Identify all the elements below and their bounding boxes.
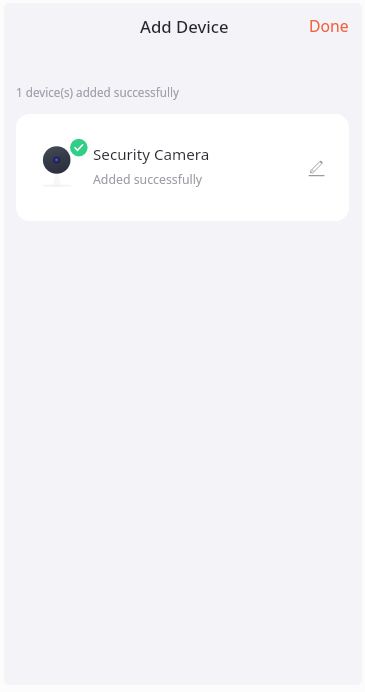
button[interactable]: Rename device xyxy=(296,148,336,188)
button[interactable]: Done xyxy=(291,5,365,49)
staticText: Added successfully xyxy=(93,171,203,188)
staticText: 1 device(s) added successfully xyxy=(16,84,179,100)
staticText: Add Device xyxy=(140,15,229,38)
staticText: Security Camera xyxy=(93,144,210,165)
button[interactable]: Security Camera xyxy=(16,114,349,221)
staticText: Done xyxy=(309,15,349,36)
